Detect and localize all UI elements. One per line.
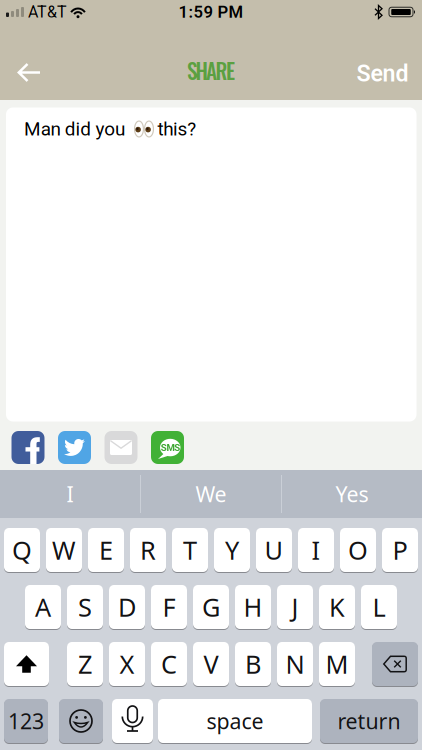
staticText: R [140,533,156,567]
staticText: AT&T [28,3,67,21]
staticText: M [325,647,348,681]
staticText: F [162,590,175,624]
staticText: U [264,533,283,567]
button[interactable]: H [235,584,271,629]
button[interactable]: Q [4,527,40,572]
button[interactable]: O [340,527,376,572]
button[interactable]: Back [7,50,51,94]
button[interactable]: I [298,527,334,572]
staticText: I [311,533,320,567]
button[interactable]: K [319,584,355,629]
staticText: Yes [335,480,368,508]
staticText: T [183,533,197,567]
staticText: We [195,480,226,508]
button[interactable]: Send [347,51,417,95]
staticText: J [291,590,298,624]
button[interactable]: Z [67,641,103,686]
staticText: X [119,647,134,681]
button[interactable]: M [319,641,355,686]
staticText: V [203,647,218,681]
button[interactable]: Y [214,527,250,572]
staticText: return [337,707,400,735]
button[interactable]: Emoji [59,698,103,743]
staticText: A [35,590,51,624]
button[interactable]: W [46,527,82,572]
staticText: D [118,590,136,624]
staticText: this? [157,118,196,140]
staticText: N [285,647,304,681]
staticText: Send [356,60,408,87]
button[interactable]: V [193,641,229,686]
staticText: K [329,590,345,624]
button[interactable]: Yes [282,470,422,518]
staticText: 123 [8,707,44,735]
button[interactable]: Shift [4,641,49,686]
staticText: 1:59 PM [178,2,243,22]
staticText: Man did you [24,118,125,140]
button[interactable]: L [361,584,397,629]
button[interactable]: B [235,641,271,686]
button[interactable]: 123 [4,698,48,743]
button[interactable]: Share to Twitter [58,431,91,464]
staticText: I [66,480,73,508]
button[interactable]: R [130,527,166,572]
button[interactable]: U [256,527,292,572]
staticText: S [78,590,92,624]
button[interactable]: X [109,641,145,686]
button[interactable]: return [320,698,418,743]
staticText: G [202,590,220,624]
button[interactable]: G [193,584,229,629]
button[interactable]: D [109,584,145,629]
button[interactable]: A [25,584,61,629]
staticText: space [206,707,263,735]
staticText: Z [78,647,92,681]
staticText: SMS [161,442,180,453]
staticText: C [161,647,177,681]
staticText: E [99,533,113,567]
button[interactable]: E [88,527,124,572]
staticText: W [52,533,76,567]
button[interactable]: S [67,584,103,629]
button[interactable]: T [172,527,208,572]
staticText: L [372,590,385,624]
button[interactable]: P [382,527,418,572]
staticText: SHARE [187,55,235,86]
button[interactable]: J [277,584,313,629]
button[interactable]: Dictation [112,698,153,743]
button[interactable]: Delete [372,641,418,686]
button[interactable]: C [151,641,187,686]
staticText: O [348,533,368,567]
button[interactable]: F [151,584,187,629]
button[interactable]: N [277,641,313,686]
button[interactable]: We [141,470,281,518]
button[interactable]: I [0,470,140,518]
staticText: Q [12,533,32,567]
button[interactable]: space [158,698,312,743]
button[interactable]: Share by Mail [104,431,137,464]
staticText: B [245,647,261,681]
button[interactable]: Share by SMS [151,431,184,464]
staticText: P [392,533,407,567]
staticText: Y [225,533,239,567]
button[interactable]: Share to Facebook [11,431,44,464]
staticText: H [243,590,262,624]
